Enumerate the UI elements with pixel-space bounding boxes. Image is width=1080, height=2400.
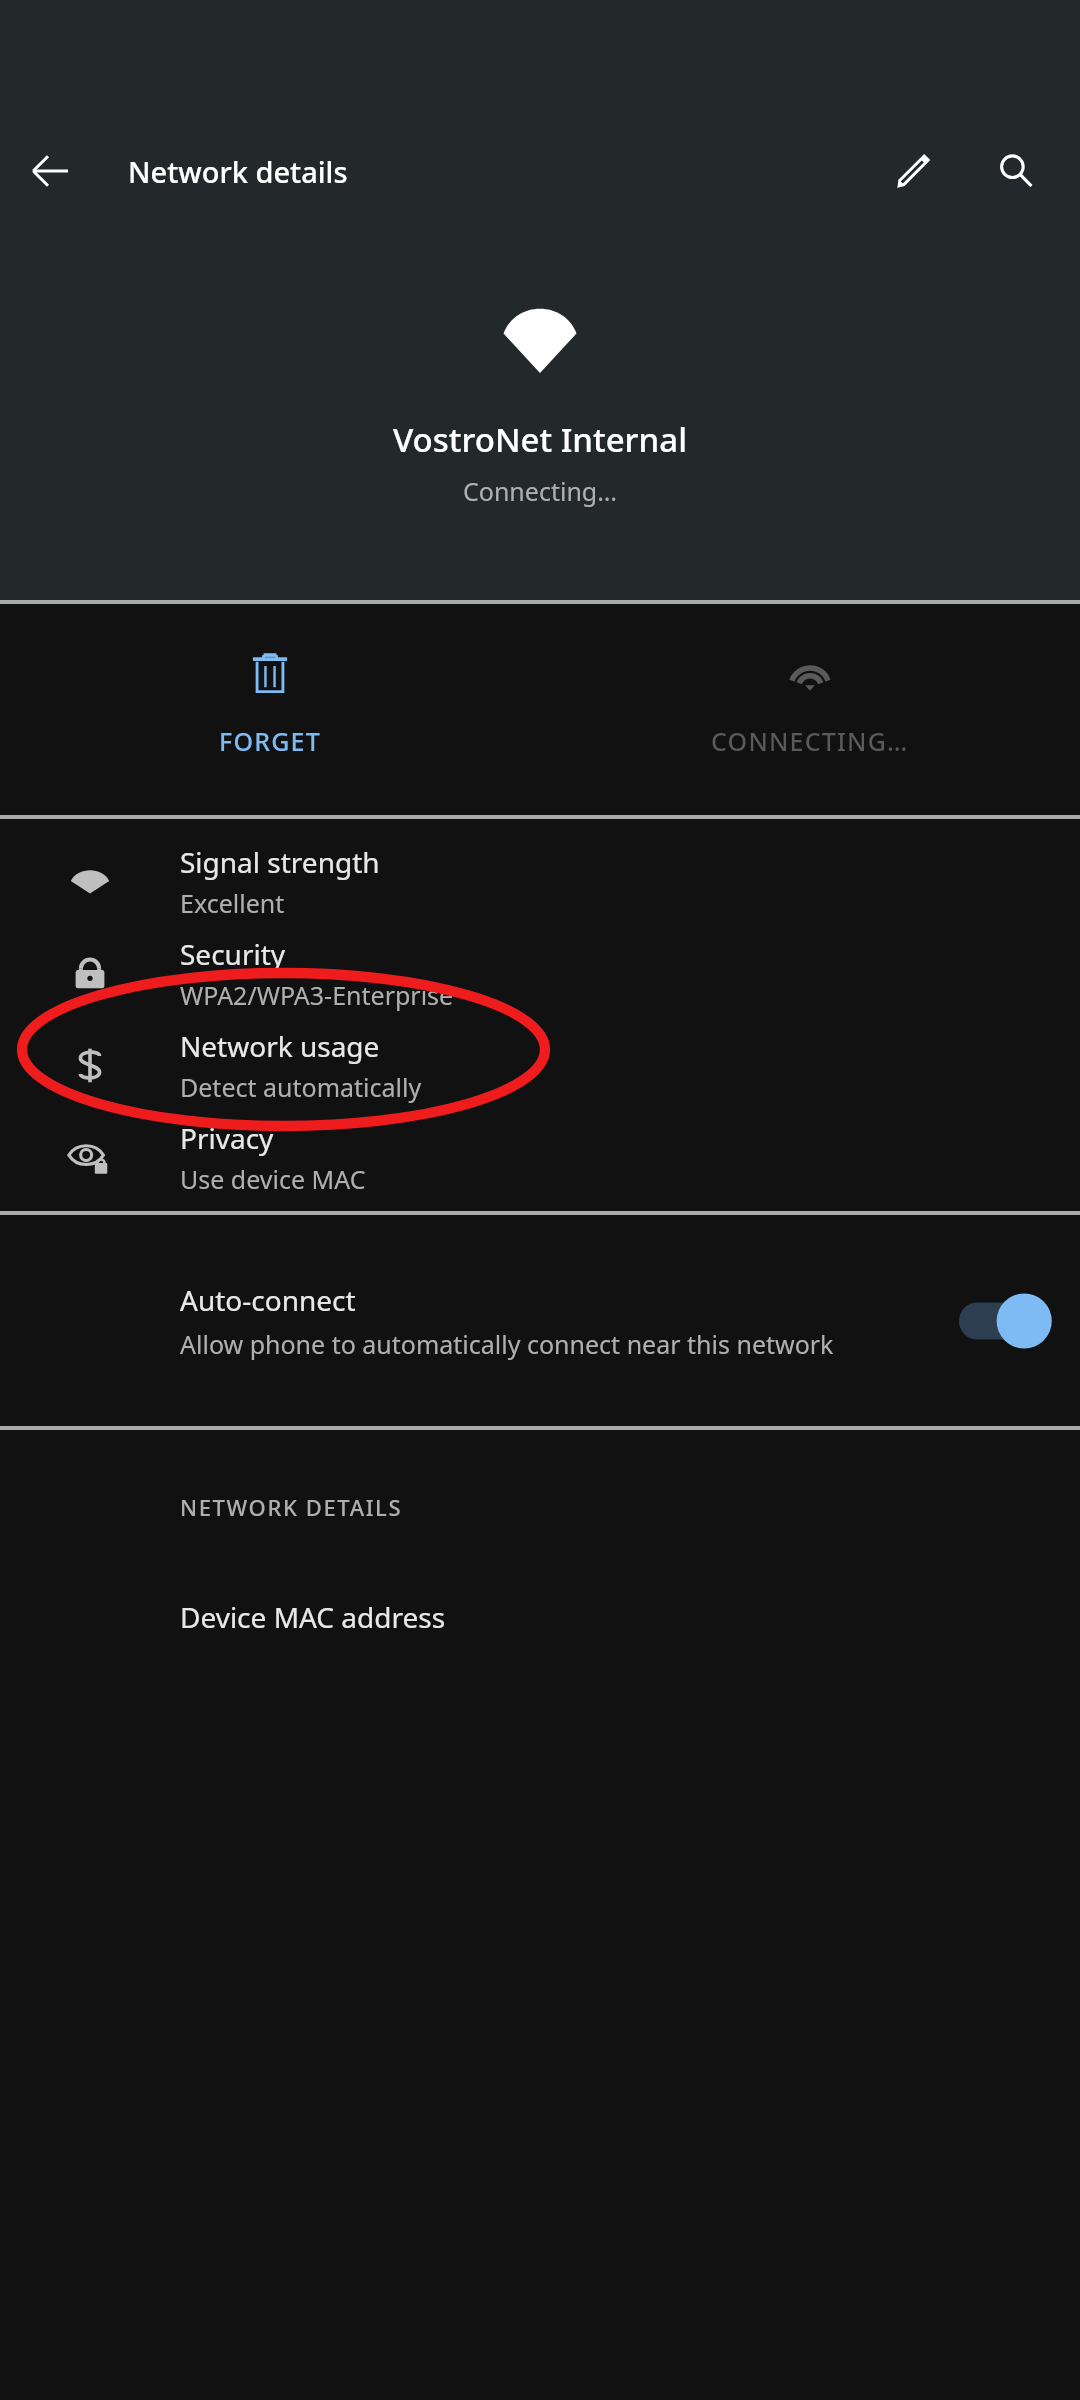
- staticText: Network usage: [180, 1027, 380, 1065]
- staticText: WPA2/WPA3-Enterprise: [180, 978, 454, 1012]
- staticText: Connecting…: [0, 474, 1080, 508]
- button[interactable]: Privacy: [0, 1111, 1080, 1203]
- button[interactable]: Network usage: [0, 1019, 1080, 1111]
- staticText: FORGET: [219, 724, 321, 758]
- button[interactable]: Auto-connect: [0, 1215, 1080, 1426]
- button[interactable]: Back: [0, 121, 100, 221]
- button[interactable]: FORGET: [0, 604, 540, 815]
- button[interactable]: Device MAC address: [0, 1598, 1080, 1636]
- staticText: Signal strength: [180, 843, 380, 881]
- button[interactable]: CONNECTING…: [540, 604, 1080, 815]
- staticText: Privacy: [180, 1119, 274, 1157]
- button[interactable]: Security: [0, 927, 1080, 1019]
- staticText: NETWORK DETAILS: [180, 1492, 403, 1522]
- button[interactable]: Edit: [866, 123, 962, 219]
- staticText: VostroNet Internal: [0, 417, 1080, 462]
- staticText: Network details: [128, 152, 348, 191]
- staticText: Auto-connect: [180, 1281, 356, 1319]
- staticText: Allow phone to automatically connect nea…: [180, 1327, 834, 1361]
- staticText: Device MAC address: [180, 1598, 446, 1636]
- staticText: Excellent: [180, 886, 285, 920]
- staticText: Detect automatically: [180, 1070, 422, 1104]
- button[interactable]: Search: [962, 121, 1070, 221]
- staticText: Security: [180, 935, 286, 973]
- staticText: Use device MAC: [180, 1162, 366, 1196]
- button[interactable]: Signal strength: [0, 835, 1080, 927]
- staticText: CONNECTING…: [711, 724, 909, 758]
